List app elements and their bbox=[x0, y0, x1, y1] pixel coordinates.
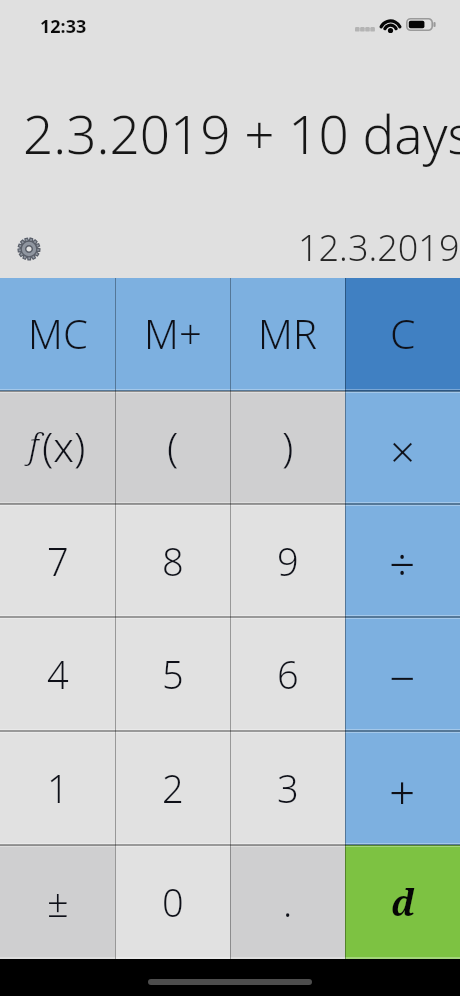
button[interactable]: d bbox=[345, 845, 460, 959]
staticText: 5 bbox=[162, 648, 184, 700]
staticText: 2 bbox=[162, 762, 184, 814]
button[interactable]: Settings bbox=[9, 227, 48, 266]
button[interactable]: − bbox=[345, 617, 460, 731]
staticText: 12.3.2019 bbox=[298, 223, 460, 272]
button[interactable]: C bbox=[345, 278, 460, 391]
staticText: d bbox=[391, 878, 415, 927]
button[interactable]: ) bbox=[230, 391, 345, 504]
staticText: . bbox=[283, 876, 293, 928]
button[interactable]: 0 bbox=[115, 845, 230, 959]
button[interactable]: 6 bbox=[230, 617, 345, 731]
staticText: 0 bbox=[162, 876, 184, 928]
staticText: 2.3.2019 + 10 days bbox=[23, 97, 460, 169]
button[interactable]: 5 bbox=[115, 617, 230, 731]
staticText: ) bbox=[282, 418, 294, 474]
staticText: 9 bbox=[277, 535, 299, 587]
button[interactable]: ± bbox=[0, 845, 115, 959]
staticText: MR bbox=[258, 306, 317, 360]
staticText: ± bbox=[47, 876, 69, 928]
staticText: 7 bbox=[47, 535, 69, 587]
staticText: ( bbox=[167, 418, 179, 474]
staticText: (x) bbox=[42, 418, 86, 474]
staticText: C bbox=[390, 305, 416, 361]
button[interactable]: M+ bbox=[115, 278, 230, 391]
staticText: ÷ bbox=[389, 532, 416, 595]
button[interactable]: 3 bbox=[230, 731, 345, 845]
button[interactable]: MC bbox=[0, 278, 115, 391]
button[interactable]: 4 bbox=[0, 617, 115, 731]
button[interactable]: 7 bbox=[0, 504, 115, 617]
staticText: + bbox=[389, 760, 416, 823]
button[interactable]: 9 bbox=[230, 504, 345, 617]
button[interactable]: × bbox=[345, 391, 460, 504]
button[interactable]: 1 bbox=[0, 731, 115, 845]
button[interactable]: . bbox=[230, 845, 345, 959]
staticText: 8 bbox=[162, 535, 184, 587]
button[interactable]: f bbox=[0, 391, 115, 504]
button[interactable]: MR bbox=[230, 278, 345, 391]
staticText: M+ bbox=[144, 306, 202, 360]
staticText: 4 bbox=[47, 648, 69, 700]
staticText: MC bbox=[28, 306, 88, 360]
button[interactable]: 8 bbox=[115, 504, 230, 617]
button[interactable]: 2 bbox=[115, 731, 230, 845]
button[interactable]: ÷ bbox=[345, 504, 460, 617]
staticText: 3 bbox=[277, 762, 299, 814]
staticText: − bbox=[389, 646, 416, 709]
staticText: 6 bbox=[277, 648, 299, 700]
staticText: f bbox=[29, 422, 39, 468]
button[interactable]: + bbox=[345, 731, 460, 845]
staticText: 1 bbox=[47, 762, 69, 814]
staticText: 12:33 bbox=[40, 14, 87, 39]
button[interactable]: ( bbox=[115, 391, 230, 504]
staticText: × bbox=[390, 421, 416, 481]
